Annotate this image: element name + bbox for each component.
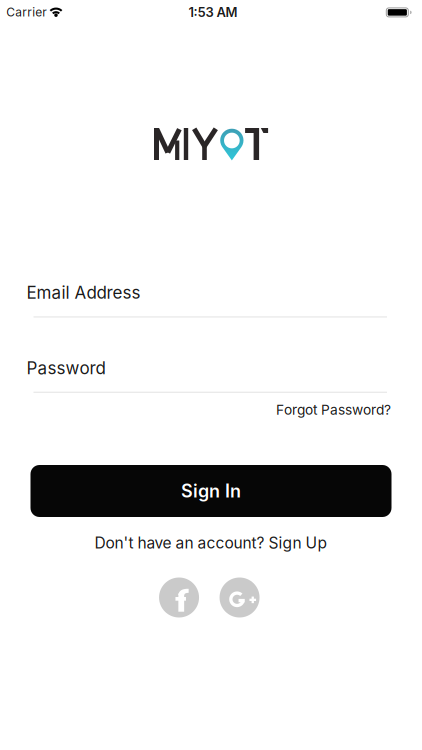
- button[interactable]: Forgot Password?: [276, 401, 391, 418]
- button[interactable]: Don't have an account? Sign Up: [94, 533, 327, 552]
- button[interactable]: [220, 577, 260, 617]
- button[interactable]: Sign In: [30, 465, 391, 517]
- staticText: Sign In: [181, 480, 241, 502]
- staticText: Don't have an account? Sign Up: [94, 533, 327, 552]
- button[interactable]: [159, 577, 199, 617]
- button[interactable]: Email Address: [33, 282, 387, 317]
- staticText: Carrier: [6, 5, 47, 19]
- button[interactable]: Password: [33, 358, 387, 393]
- staticText: 1:53 AM: [188, 4, 237, 20]
- staticText: Password: [26, 358, 105, 378]
- staticText: Forgot Password?: [276, 401, 391, 418]
- staticText: Email Address: [26, 282, 140, 303]
